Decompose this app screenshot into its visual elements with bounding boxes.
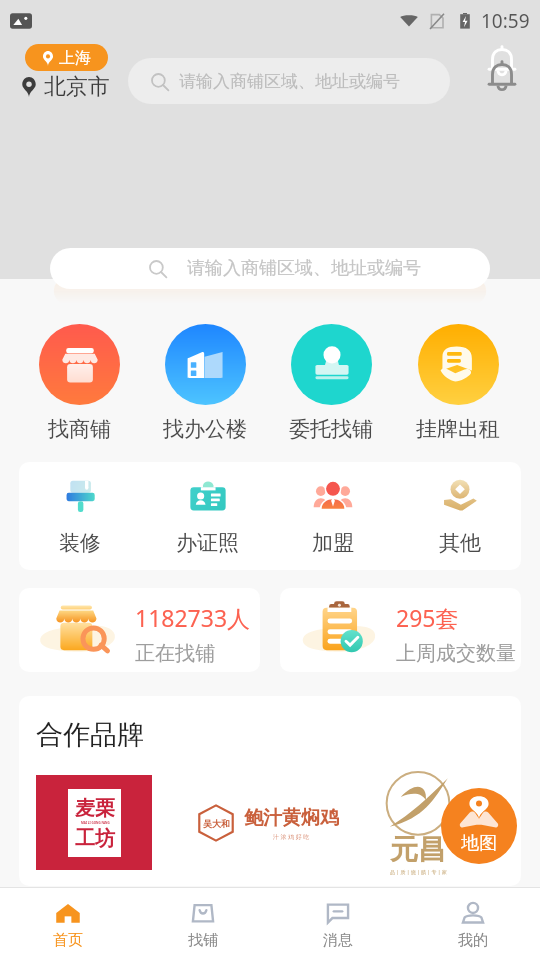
button[interactable]: 295套 xyxy=(280,588,521,672)
staticText: 品 | 质 | 烧 | 腊 | 专 | 家 xyxy=(390,869,447,876)
button[interactable]: 加盟 xyxy=(312,476,354,556)
button[interactable]: 我的 xyxy=(405,888,540,960)
staticText: 装修 xyxy=(59,530,101,556)
staticText: 正在找铺 xyxy=(135,641,215,666)
staticText: 我的 xyxy=(458,931,488,950)
staticText: 北京市 xyxy=(44,73,110,101)
button[interactable]: 装修 xyxy=(59,476,101,556)
staticText: 元昌 xyxy=(390,832,446,867)
staticText: 找商铺 xyxy=(48,416,111,442)
staticText: 找办公楼 xyxy=(163,416,247,442)
staticText: 鲍汁黄焖鸡 xyxy=(244,806,339,830)
staticText: 加盟 xyxy=(312,530,354,556)
button[interactable]: 元昌 xyxy=(362,775,474,880)
staticText: 首页 xyxy=(53,931,83,950)
staticText: 10:59 xyxy=(481,8,530,34)
staticText: 地图 xyxy=(461,832,497,855)
staticText: 找铺 xyxy=(188,931,218,950)
button[interactable]: 首页 xyxy=(0,888,135,960)
button[interactable]: 1182733人 xyxy=(19,588,260,672)
button[interactable]: 请输入商铺区域、地址或编号 xyxy=(128,58,450,104)
staticText: 上海 xyxy=(59,48,91,68)
staticText: 上周成交数量 xyxy=(396,641,516,666)
staticText: 合作品牌 xyxy=(36,718,144,752)
button[interactable]: 消息 xyxy=(270,888,405,960)
staticText: 吴大和 xyxy=(203,818,230,829)
button[interactable]: 办证照 xyxy=(176,476,239,556)
staticText: 委托找铺 xyxy=(289,416,373,442)
button[interactable]: 通知 xyxy=(480,52,524,96)
button[interactable]: 其他 xyxy=(439,476,481,556)
button[interactable]: 找办公楼 xyxy=(163,324,247,442)
staticText: MAI LI GONG FANG xyxy=(81,821,110,825)
button[interactable]: 挂牌出租 xyxy=(416,324,500,442)
button[interactable]: 麦栗 xyxy=(36,775,152,870)
staticText: 办证照 xyxy=(176,530,239,556)
staticText: 295套 xyxy=(396,602,459,633)
button[interactable]: 请输入商铺区域、地址或编号 xyxy=(50,248,490,289)
staticText: 工坊 xyxy=(75,826,115,851)
staticText: 挂牌出租 xyxy=(416,416,500,442)
staticText: 请输入商铺区域、地址或编号 xyxy=(187,257,421,280)
staticText: 汁 浓 鸡 好 吃 xyxy=(273,833,310,841)
staticText: 1182733人 xyxy=(135,602,251,633)
staticText: 麦栗 xyxy=(75,796,115,821)
staticText: 请输入商铺区域、地址或编号 xyxy=(179,71,400,92)
button[interactable]: 北京市 xyxy=(21,73,110,101)
button[interactable]: 委托找铺 xyxy=(289,324,373,442)
staticText: 消息 xyxy=(323,931,353,950)
button[interactable]: 地图 xyxy=(441,788,517,864)
button[interactable]: 吴大和 xyxy=(190,775,342,870)
staticText: 其他 xyxy=(439,530,481,556)
button[interactable]: 找商铺 xyxy=(39,324,120,442)
button[interactable]: 上海 xyxy=(25,44,108,71)
button[interactable]: 找铺 xyxy=(135,888,270,960)
